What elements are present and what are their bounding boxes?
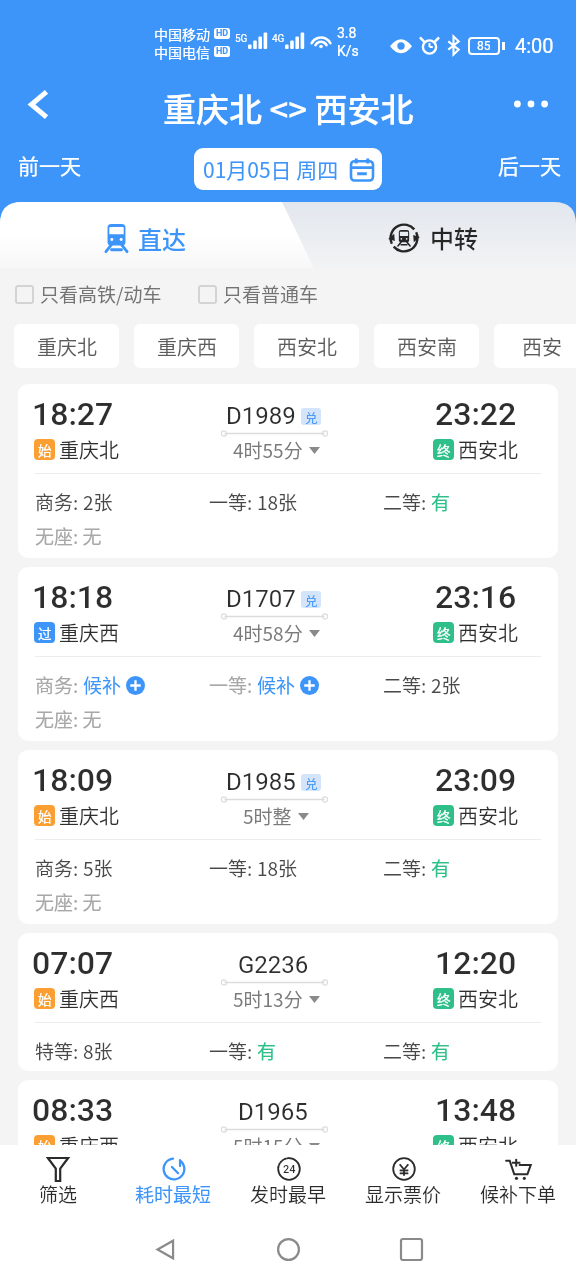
- staticText: 只看普通车: [223, 280, 319, 308]
- staticText: 一等:: [209, 488, 257, 516]
- staticText: D1989: [226, 402, 296, 430]
- staticText: 西安北: [458, 435, 518, 464]
- button[interactable]: More options: [503, 76, 559, 132]
- button[interactable]: 重庆西: [134, 324, 239, 368]
- staticText: 5时13分: [233, 985, 303, 1013]
- staticText: 直达: [138, 221, 186, 256]
- staticText: K/s: [337, 43, 359, 59]
- staticText: 2张: [431, 671, 461, 699]
- button[interactable]: Recent apps: [380, 1218, 442, 1280]
- button[interactable]: 中转: [290, 202, 576, 268]
- staticText: 中国电信: [154, 42, 210, 60]
- staticText: 重庆北: [59, 435, 119, 464]
- staticText: 中国移动: [154, 24, 210, 42]
- staticText: 只看高铁/动车: [40, 280, 162, 308]
- staticText: 二等:: [383, 1037, 431, 1065]
- staticText: 有: [257, 1184, 277, 1212]
- button[interactable]: Back: [134, 1218, 196, 1280]
- button[interactable]: 西安南: [374, 324, 479, 368]
- staticText: 8张: [83, 1037, 113, 1065]
- button[interactable]: 重庆北: [14, 324, 119, 368]
- staticText: 一等:: [209, 854, 257, 882]
- staticText: 08:33: [32, 1091, 114, 1129]
- staticText: 5时15分: [233, 1132, 303, 1160]
- staticText: 有: [431, 1037, 451, 1065]
- staticText: 18:27: [32, 395, 114, 433]
- staticText: 西安: [522, 332, 562, 361]
- staticText: 2张: [83, 488, 113, 516]
- staticText: 12:20: [435, 944, 517, 982]
- staticText: 始: [38, 989, 52, 1009]
- staticText: 过: [38, 623, 52, 643]
- staticText: 后一天: [498, 150, 561, 180]
- button[interactable]: 只看普通车: [198, 280, 325, 308]
- staticText: 西安北: [277, 332, 337, 361]
- button[interactable]: 显示票价: [346, 1145, 461, 1217]
- staticText: 有: [431, 488, 451, 516]
- button[interactable]: Back: [10, 76, 66, 132]
- button[interactable]: 18:27: [18, 384, 558, 558]
- staticText: 13:48: [435, 1091, 517, 1129]
- button[interactable]: 07:07: [18, 933, 558, 1071]
- button[interactable]: 耗时最短: [116, 1145, 231, 1217]
- staticText: 发时最早: [250, 1180, 327, 1208]
- staticText: 前一天: [18, 150, 81, 180]
- staticText: 18:18: [32, 578, 114, 616]
- staticText: 18:09: [32, 761, 114, 799]
- staticText: 85: [477, 39, 491, 53]
- staticText: 一等:: [209, 671, 257, 699]
- staticText: 3.8: [337, 25, 357, 41]
- button[interactable]: 后一天: [488, 140, 571, 190]
- staticText: 有: [431, 1184, 451, 1212]
- staticText: 4时58分: [233, 619, 303, 647]
- staticText: 无座: 无: [35, 522, 102, 550]
- staticText: 终: [437, 623, 451, 643]
- staticText: 二等:: [383, 1184, 431, 1212]
- staticText: 07:07: [32, 944, 114, 982]
- staticText: 18张: [257, 854, 298, 882]
- button[interactable]: 08:33: [18, 1080, 558, 1254]
- button[interactable]: 18:09: [18, 750, 558, 924]
- staticText: 23:22: [435, 395, 517, 433]
- button[interactable]: 筛选: [0, 1145, 116, 1217]
- staticText: 重庆西: [59, 984, 119, 1013]
- staticText: D1707: [226, 585, 296, 613]
- staticText: 特等:: [35, 1037, 83, 1065]
- button[interactable]: 前一天: [8, 140, 91, 190]
- button[interactable]: 只看高铁/动车: [15, 280, 168, 308]
- staticText: D1985: [226, 768, 296, 796]
- button[interactable]: 西安: [494, 324, 576, 368]
- staticText: 商务:: [35, 854, 83, 882]
- button[interactable]: 24: [231, 1145, 346, 1217]
- staticText: 中转: [430, 220, 478, 255]
- staticText: 二等:: [383, 488, 431, 516]
- staticText: 无座: 无: [35, 705, 102, 733]
- staticText: 重庆西: [59, 1131, 119, 1160]
- button[interactable]: 西安北: [254, 324, 359, 368]
- staticText: 5时整: [243, 802, 292, 830]
- button[interactable]: 18:18: [18, 567, 558, 741]
- button[interactable]: Home: [257, 1218, 319, 1280]
- staticText: 候补下单: [480, 1180, 557, 1208]
- button[interactable]: 01月05日 周四: [194, 148, 382, 190]
- staticText: HD: [216, 28, 229, 39]
- staticText: 显示票价: [365, 1180, 442, 1208]
- staticText: 始: [38, 1136, 52, 1156]
- staticText: 4:00: [515, 34, 554, 57]
- staticText: 终: [437, 806, 451, 826]
- staticText: 01月05日 周四: [203, 154, 339, 184]
- staticText: 重庆北: [37, 332, 97, 361]
- button[interactable]: 候补下单: [461, 1145, 576, 1217]
- staticText: 重庆北 <> 西安北: [163, 84, 414, 132]
- staticText: 5G: [235, 33, 248, 45]
- staticText: G2236: [238, 951, 309, 979]
- button[interactable]: 直达: [0, 202, 290, 268]
- staticText: 重庆北: [59, 801, 119, 830]
- staticText: 商务:: [35, 488, 83, 516]
- staticText: 终: [437, 440, 451, 460]
- staticText: 有: [431, 854, 451, 882]
- staticText: 商务:: [35, 1184, 83, 1212]
- staticText: 耗时最短: [135, 1180, 212, 1208]
